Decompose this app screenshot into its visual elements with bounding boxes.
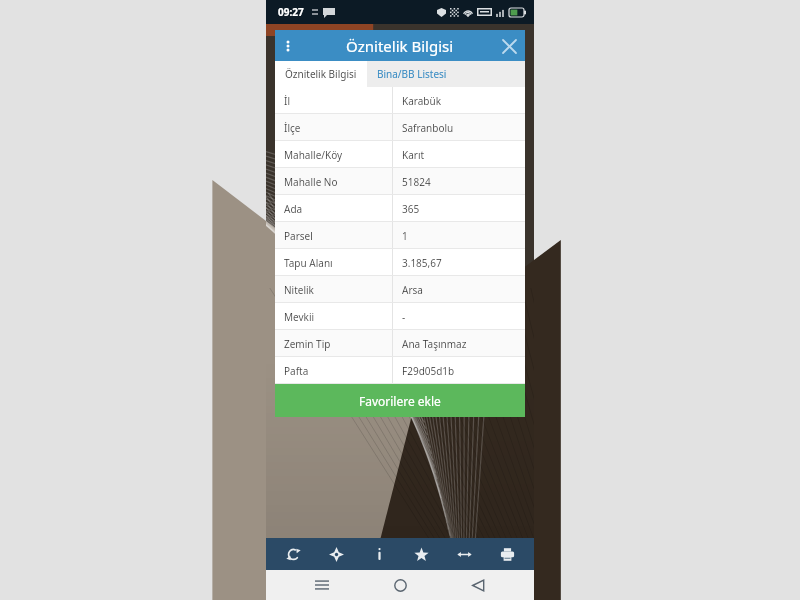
staticText: Öznitelik Bilgisi [346, 36, 454, 56]
button[interactable]: Parsel [275, 222, 525, 249]
button[interactable]: Mevkii [275, 303, 525, 330]
staticText: Arsa [402, 283, 423, 297]
staticText: Bina/BB Listesi [377, 67, 447, 81]
staticText: - [402, 310, 406, 324]
button[interactable]: Close [497, 34, 521, 58]
staticText: Mevkii [284, 310, 315, 324]
staticText: İlçe [284, 121, 301, 135]
button[interactable]: Tapu Alanı [275, 249, 525, 276]
staticText: Mahalle/Köy [284, 148, 343, 162]
button[interactable]: İlçe [275, 114, 525, 141]
staticText: Ada [284, 202, 303, 216]
staticText: Ana Taşınmaz [402, 337, 467, 351]
staticText: Parsel [284, 229, 313, 243]
staticText: 1 [402, 229, 408, 243]
staticText: Nitelik [284, 283, 314, 297]
staticText: 51824 [402, 175, 431, 189]
staticText: F29d05d1b [402, 364, 455, 378]
button[interactable]: Print [491, 538, 523, 570]
staticText: Tapu Alanı [284, 256, 333, 270]
staticText: Öznitelik Bilgisi [285, 67, 357, 81]
staticText: Karıt [402, 148, 425, 162]
button[interactable]: Mahalle No [275, 168, 525, 195]
staticText: 3.185,67 [402, 256, 442, 270]
staticText: Pafta [284, 364, 309, 378]
staticText: Karabük [402, 94, 442, 108]
button[interactable]: Bina/BB Listesi [367, 61, 457, 87]
button[interactable]: Favorilere ekle [275, 384, 525, 417]
button[interactable]: Info [363, 538, 395, 570]
staticText: 09:27 [278, 5, 304, 19]
button[interactable]: Zemin Tip [275, 330, 525, 357]
staticText: Zemin Tip [284, 337, 331, 351]
button[interactable]: Mahalle/Köy [275, 141, 525, 168]
button[interactable]: Favorites [405, 538, 437, 570]
staticText: 365 [402, 202, 420, 216]
button[interactable]: Recent apps [300, 570, 344, 600]
button[interactable]: Ada [275, 195, 525, 222]
button[interactable]: Home [378, 570, 422, 600]
button[interactable]: Measure [448, 538, 480, 570]
button[interactable]: Refresh [277, 538, 309, 570]
staticText: Safranbolu [402, 121, 454, 135]
button[interactable]: More options [275, 33, 301, 59]
button[interactable]: İl [275, 87, 525, 114]
button[interactable]: Öznitelik Bilgisi [275, 61, 367, 87]
button[interactable]: Locate [320, 538, 352, 570]
button[interactable]: Back [456, 570, 500, 600]
staticText: Favorilere ekle [359, 393, 441, 409]
button[interactable]: Nitelik [275, 276, 525, 303]
staticText: Mahalle No [284, 175, 338, 189]
staticText: İl [284, 94, 290, 108]
button[interactable]: Pafta [275, 357, 525, 384]
